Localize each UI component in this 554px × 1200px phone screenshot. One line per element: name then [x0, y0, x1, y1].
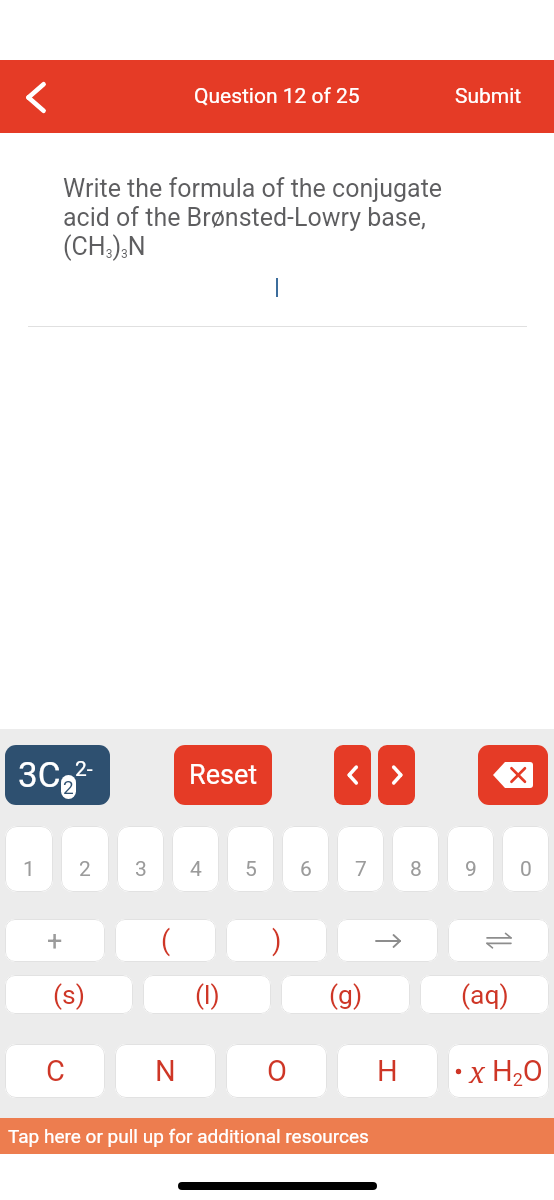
button[interactable]: 6	[282, 826, 329, 892]
staticText: 3C	[18, 755, 61, 796]
staticText: 1	[23, 857, 35, 882]
button[interactable]: 5	[227, 826, 274, 892]
button[interactable]: N	[115, 1044, 216, 1098]
button[interactable]: 3	[117, 826, 164, 892]
button[interactable]: (	[115, 919, 216, 962]
button[interactable]: )	[226, 919, 327, 962]
button[interactable]: Equilibrium	[448, 919, 549, 962]
button[interactable]: Previous	[334, 745, 371, 805]
staticText: x	[469, 1052, 485, 1091]
staticText: acid of the Brønsted-Lowry base,	[63, 203, 426, 232]
staticText: 4	[190, 857, 202, 882]
button[interactable]: 4	[172, 826, 219, 892]
staticText: Reset	[189, 759, 258, 791]
staticText: N	[155, 1054, 176, 1088]
staticText: 5	[245, 857, 257, 882]
staticText: C	[46, 1054, 65, 1088]
staticText: 2	[79, 857, 91, 882]
button[interactable]: (g)	[281, 975, 410, 1014]
button[interactable]: Back	[14, 75, 58, 119]
staticText: Write the formula of the conjugate	[63, 174, 443, 203]
staticText: 2-	[75, 757, 93, 782]
button[interactable]: 3C	[5, 745, 110, 805]
button[interactable]: Reset	[174, 745, 272, 805]
staticText: 9	[465, 857, 477, 882]
button[interactable]: 7	[337, 826, 384, 892]
staticText: (	[161, 925, 171, 957]
staticText: 2	[63, 776, 74, 798]
staticText: (l)	[195, 979, 220, 1010]
staticText: )	[272, 925, 282, 957]
button[interactable]: 0	[502, 826, 549, 892]
button[interactable]: Tap here or pull up for additional resou…	[0, 1118, 554, 1154]
button[interactable]: (aq)	[420, 975, 549, 1014]
button[interactable]: 1	[5, 826, 53, 892]
button[interactable]: Delete	[478, 745, 548, 805]
button[interactable]: 8	[392, 826, 439, 892]
staticText: Question 12 of 25	[194, 84, 360, 109]
staticText: 8	[410, 857, 422, 882]
button[interactable]: 2	[61, 826, 109, 892]
button[interactable]: Submit	[423, 70, 554, 123]
staticText: (CH3)3N	[63, 232, 146, 261]
button[interactable]: Hydrate	[448, 1044, 549, 1098]
button[interactable]: +	[5, 919, 105, 962]
button[interactable]: (s)	[5, 975, 133, 1014]
staticText: Tap here or pull up for additional resou…	[8, 1125, 369, 1147]
staticText: 3	[135, 857, 147, 882]
staticText: Submit	[455, 84, 522, 109]
staticText: 0	[520, 857, 532, 882]
button[interactable]: O	[226, 1044, 327, 1098]
staticText: 7	[355, 857, 367, 882]
button[interactable]: H	[337, 1044, 438, 1098]
staticText: (g)	[329, 979, 363, 1010]
button[interactable]: C	[5, 1044, 105, 1098]
button[interactable]: (l)	[143, 975, 271, 1014]
staticText: 6	[300, 857, 312, 882]
staticText: (aq)	[461, 979, 509, 1010]
staticText: (s)	[53, 979, 85, 1010]
staticText: H	[377, 1054, 398, 1088]
staticText: H2O	[492, 1054, 543, 1090]
staticText: +	[47, 925, 63, 957]
button[interactable]: Yields	[337, 919, 438, 962]
button[interactable]: Next	[378, 745, 415, 805]
button[interactable]: 9	[447, 826, 494, 892]
staticText: O	[267, 1054, 287, 1088]
